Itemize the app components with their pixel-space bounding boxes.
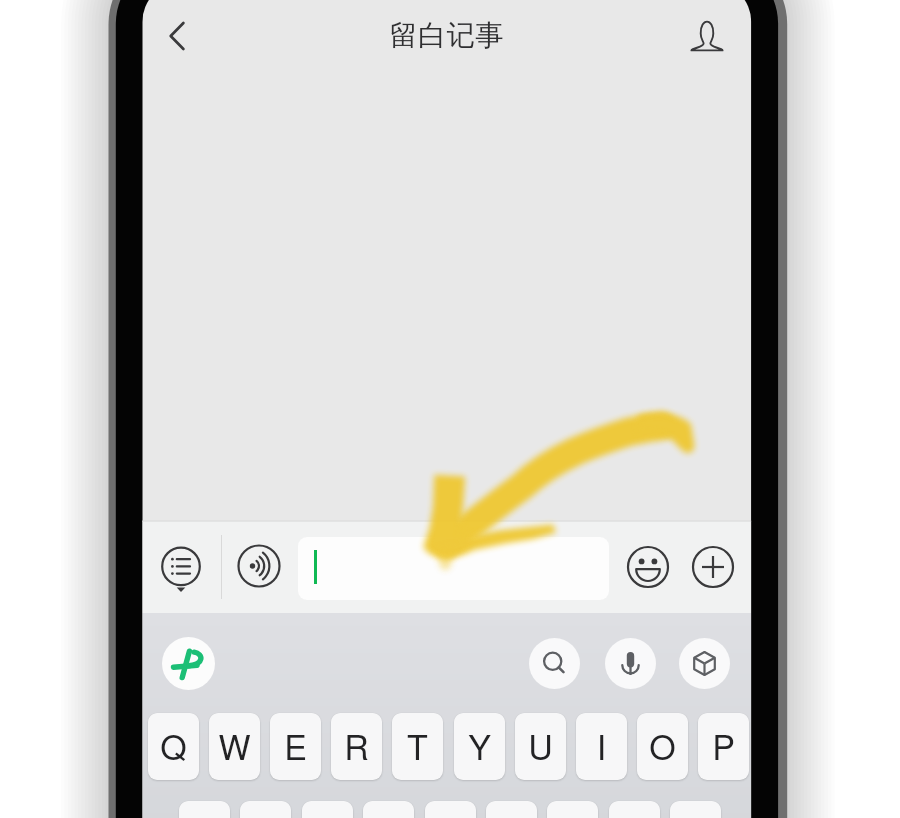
staticText: Q [148,721,199,780]
button[interactable]: R [331,713,382,780]
button[interactable]: O [637,713,688,780]
button[interactable]: K [609,801,660,818]
staticText: E [270,721,321,780]
button[interactable]: J [547,801,598,818]
button[interactable]: L [670,801,721,818]
staticText: P [698,721,749,780]
staticText: W [209,721,260,780]
button[interactable]: Profile [684,13,730,59]
staticText: Y [454,721,505,780]
button[interactable]: U [515,713,566,780]
button[interactable]: H [486,801,537,818]
button[interactable]: W [209,713,260,780]
button[interactable]: Toolbox [679,638,730,689]
staticText: 留白记事 [330,18,563,56]
button[interactable]: D [302,801,353,818]
button[interactable]: Voice input [605,638,656,689]
button[interactable]: Back [154,13,200,59]
button[interactable]: Emoji [623,542,673,592]
staticText: R [331,721,382,780]
staticText: O [637,721,688,780]
button[interactable]: Q [148,713,199,780]
button[interactable]: F [363,801,414,818]
button[interactable]: Message input field [298,537,609,600]
staticText: I [576,721,627,780]
button[interactable]: Search [529,638,580,689]
staticText: U [515,721,566,780]
button[interactable]: Add [688,542,738,592]
button[interactable]: I [576,713,627,780]
button[interactable]: More options [154,540,208,604]
button[interactable]: Y [454,713,505,780]
button[interactable]: Voice message [233,540,285,592]
button[interactable]: A [179,801,230,818]
button[interactable]: P [698,713,749,780]
staticText: T [392,721,443,780]
button[interactable]: E [270,713,321,780]
button[interactable]: G [425,801,476,818]
button[interactable]: T [392,713,443,780]
button[interactable]: Input method logo [162,637,215,690]
button[interactable]: S [240,801,291,818]
